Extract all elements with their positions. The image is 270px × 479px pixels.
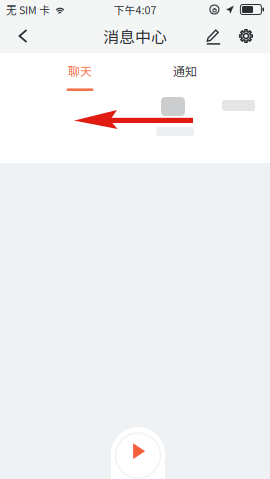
button[interactable]: 通知 — [160, 53, 210, 95]
button[interactable]: Back — [6, 19, 40, 52]
staticText: 无 SIM 卡 — [6, 2, 50, 17]
staticText: 通知 — [173, 62, 197, 79]
staticText: 消息中心 — [103, 24, 167, 48]
button[interactable] — [0, 95, 270, 163]
staticText: 下午4:07 — [113, 2, 156, 17]
button[interactable]: Play — [111, 427, 165, 479]
button[interactable]: Compose — [199, 19, 228, 52]
button[interactable]: 聊天 — [0, 53, 160, 95]
button[interactable]: Settings — [228, 20, 264, 52]
staticText: 聊天 — [68, 62, 92, 79]
